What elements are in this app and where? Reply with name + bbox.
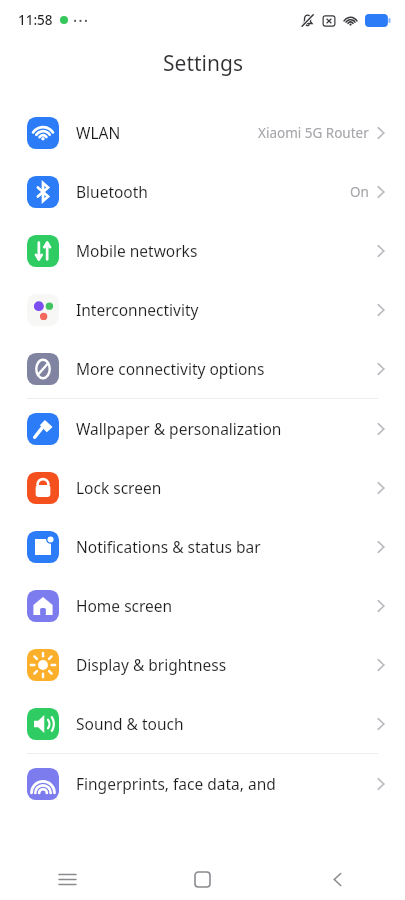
staticText: Settings [163,49,243,78]
button[interactable]: Bluetooth [0,162,405,221]
button[interactable]: Notifications & status bar [0,517,405,576]
staticText: Mobile networks [76,240,198,261]
staticText: Xiaomi 5G Router [258,124,369,142]
staticText: Home screen [76,595,173,616]
staticText: Interconnectivity [76,299,199,320]
staticText: Bluetooth [76,181,148,202]
button[interactable]: Home screen [0,576,405,635]
button[interactable]: Display & brightness [0,635,405,694]
staticText: Display & brightness [76,654,227,675]
button[interactable]: Fingerprints, face data, and [0,754,405,813]
button[interactable]: Mobile networks [0,221,405,280]
button[interactable]: Recent apps [0,858,135,900]
button[interactable]: Lock screen [0,458,405,517]
staticText: On [350,183,369,201]
button[interactable]: Sound & touch [0,694,405,753]
staticText: Lock screen [76,477,162,498]
staticText: 11:58 [18,11,53,29]
button[interactable]: More connectivity options [0,339,405,398]
button[interactable]: Back [270,858,405,900]
button[interactable]: Wallpaper & personalization [0,399,405,458]
staticText: Sound & touch [76,713,184,734]
staticText: WLAN [76,122,121,143]
button[interactable]: WLAN [0,103,405,162]
button[interactable]: Home [135,858,270,900]
staticText: Notifications & status bar [76,536,261,557]
staticText: More connectivity options [76,358,265,379]
button[interactable]: Interconnectivity [0,280,405,339]
staticText: Wallpaper & personalization [76,418,282,439]
staticText: Fingerprints, face data, and [76,773,276,794]
